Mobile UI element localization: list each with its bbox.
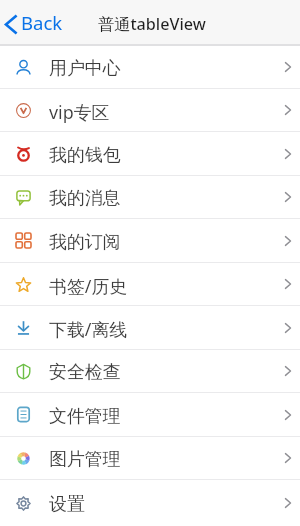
staticText: Back	[21, 10, 63, 35]
staticText: 安全检查	[49, 361, 121, 384]
button[interactable]: 安全检查	[0, 350, 300, 393]
staticText: 用户中心	[49, 57, 121, 80]
staticText: 我的消息	[49, 187, 121, 210]
staticText: 普通tableView	[98, 13, 206, 35]
button[interactable]: 下载/离线	[0, 306, 300, 350]
button[interactable]: 用户中心	[0, 46, 300, 89]
staticText: 下载/离线	[49, 317, 128, 341]
staticText: 书签/历史	[49, 274, 128, 298]
button[interactable]: 我的订阅	[0, 219, 300, 263]
staticText: 设置	[49, 493, 85, 516]
button[interactable]: vip专区	[0, 89, 300, 132]
staticText: 我的订阅	[49, 231, 121, 254]
staticText: vip专区	[49, 100, 110, 124]
staticText: 文件管理	[49, 405, 121, 428]
staticText: 我的钱包	[49, 144, 121, 167]
button[interactable]: 文件管理	[0, 393, 300, 437]
button[interactable]: 我的钱包	[0, 132, 300, 176]
button[interactable]: 图片管理	[0, 437, 300, 480]
button[interactable]: 我的消息	[0, 176, 300, 219]
staticText: 图片管理	[49, 448, 121, 471]
button[interactable]: 设置	[0, 480, 300, 526]
button[interactable]: Back	[0, 6, 69, 40]
button[interactable]: 书签/历史	[0, 263, 300, 306]
